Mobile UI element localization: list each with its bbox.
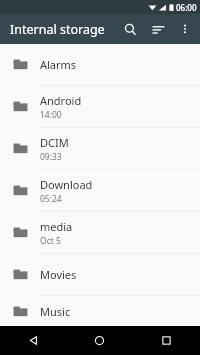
- button[interactable]: Download: [0, 170, 200, 211]
- staticText: 06:00: [176, 2, 197, 13]
- staticText: Music: [40, 304, 71, 319]
- button[interactable]: DCIM: [0, 128, 200, 169]
- button[interactable]: Music: [0, 296, 200, 326]
- button[interactable]: Search: [116, 15, 144, 43]
- staticText: Internal storage: [10, 21, 105, 38]
- staticText: media: [40, 219, 73, 234]
- button[interactable]: Alarms: [0, 44, 200, 85]
- staticText: Download: [40, 177, 93, 192]
- button[interactable]: Movies: [0, 254, 200, 295]
- button[interactable]: Recent apps: [133, 326, 200, 355]
- button[interactable]: Sort: [144, 15, 172, 43]
- button[interactable]: Back: [0, 326, 66, 355]
- staticText: DCIM: [40, 135, 69, 150]
- staticText: 09:33: [40, 151, 62, 163]
- button[interactable]: More options: [172, 16, 198, 42]
- staticText: Oct 5: [40, 235, 61, 247]
- staticText: 14:00: [40, 109, 62, 121]
- staticText: Movies: [40, 267, 77, 282]
- button[interactable]: Android: [0, 86, 200, 127]
- staticText: Alarms: [40, 57, 77, 72]
- staticText: 05:24: [40, 193, 62, 205]
- staticText: Android: [40, 93, 82, 108]
- button[interactable]: Home: [66, 326, 133, 355]
- button[interactable]: media: [0, 212, 200, 253]
